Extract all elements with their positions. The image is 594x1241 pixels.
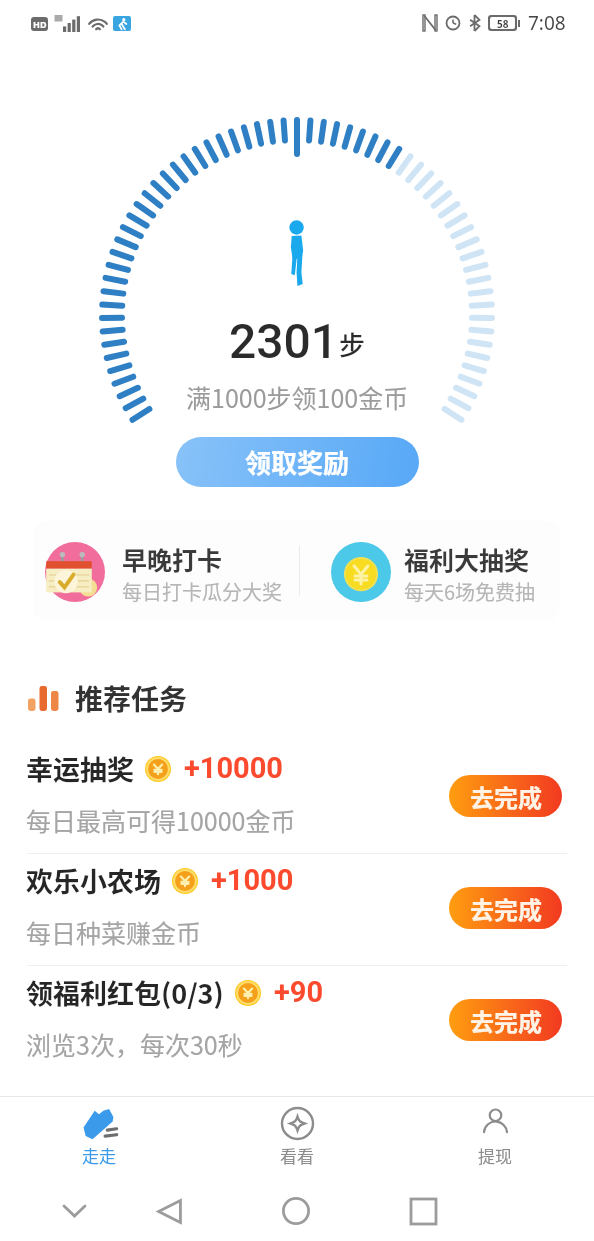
staticText: 去完成 bbox=[470, 1003, 542, 1038]
staticText: +1000 bbox=[211, 863, 294, 897]
staticText: 提现 bbox=[478, 1143, 512, 1168]
button[interactable]: 欢乐小农场 bbox=[0, 854, 594, 965]
staticText: 2301 bbox=[229, 313, 339, 369]
staticText: 58 bbox=[497, 17, 509, 29]
button[interactable]: 走走 bbox=[0, 1097, 198, 1181]
button[interactable]: 早晚打卡 bbox=[33, 521, 299, 621]
staticText: 每天6场免费抽 bbox=[404, 577, 536, 606]
button[interactable]: 提现 bbox=[396, 1097, 594, 1181]
staticText: 幸运抽奖 bbox=[26, 749, 134, 788]
button[interactable]: Recents bbox=[400, 1188, 446, 1234]
button[interactable]: 去完成 bbox=[449, 999, 562, 1041]
staticText: 福利大抽奖 bbox=[404, 541, 530, 577]
staticText: +10000 bbox=[184, 751, 283, 785]
button[interactable]: 领福利红包(0/3) bbox=[0, 966, 594, 1077]
staticText: 浏览3次，每次30秒 bbox=[26, 1026, 243, 1062]
button[interactable]: Back bbox=[146, 1188, 192, 1234]
staticText: 每日打卡瓜分大奖 bbox=[122, 577, 282, 606]
staticText: 满1000步领100金币 bbox=[186, 379, 409, 415]
staticText: 领取奖励 bbox=[245, 443, 350, 481]
staticText: 看看 bbox=[280, 1143, 314, 1168]
staticText: 欢乐小农场 bbox=[26, 861, 161, 900]
staticText: 领福利红包(0/3) bbox=[26, 973, 224, 1012]
staticText: +90 bbox=[274, 975, 324, 1009]
staticText: 早晚打卡 bbox=[122, 541, 223, 577]
button[interactable]: Home bbox=[273, 1188, 319, 1234]
staticText: 每日种菜赚金币 bbox=[26, 914, 202, 950]
staticText: 每日最高可得10000金币 bbox=[26, 802, 296, 838]
staticText: 7:08 bbox=[528, 10, 566, 36]
staticText: 去完成 bbox=[470, 779, 542, 814]
button[interactable]: 看看 bbox=[198, 1097, 396, 1181]
button[interactable]: Hide keyboard bbox=[51, 1188, 97, 1234]
button[interactable]: 福利大抽奖 bbox=[300, 521, 560, 621]
staticText: HD bbox=[33, 18, 47, 30]
staticText: 推荐任务 bbox=[75, 678, 188, 718]
button[interactable]: 去完成 bbox=[449, 887, 562, 929]
button[interactable]: 幸运抽奖 bbox=[0, 742, 594, 853]
staticText: 步 bbox=[339, 325, 366, 363]
staticText: 去完成 bbox=[470, 891, 542, 926]
button[interactable]: 领取奖励 bbox=[176, 437, 419, 487]
staticText: 走走 bbox=[82, 1143, 116, 1168]
button[interactable]: 去完成 bbox=[449, 775, 562, 817]
